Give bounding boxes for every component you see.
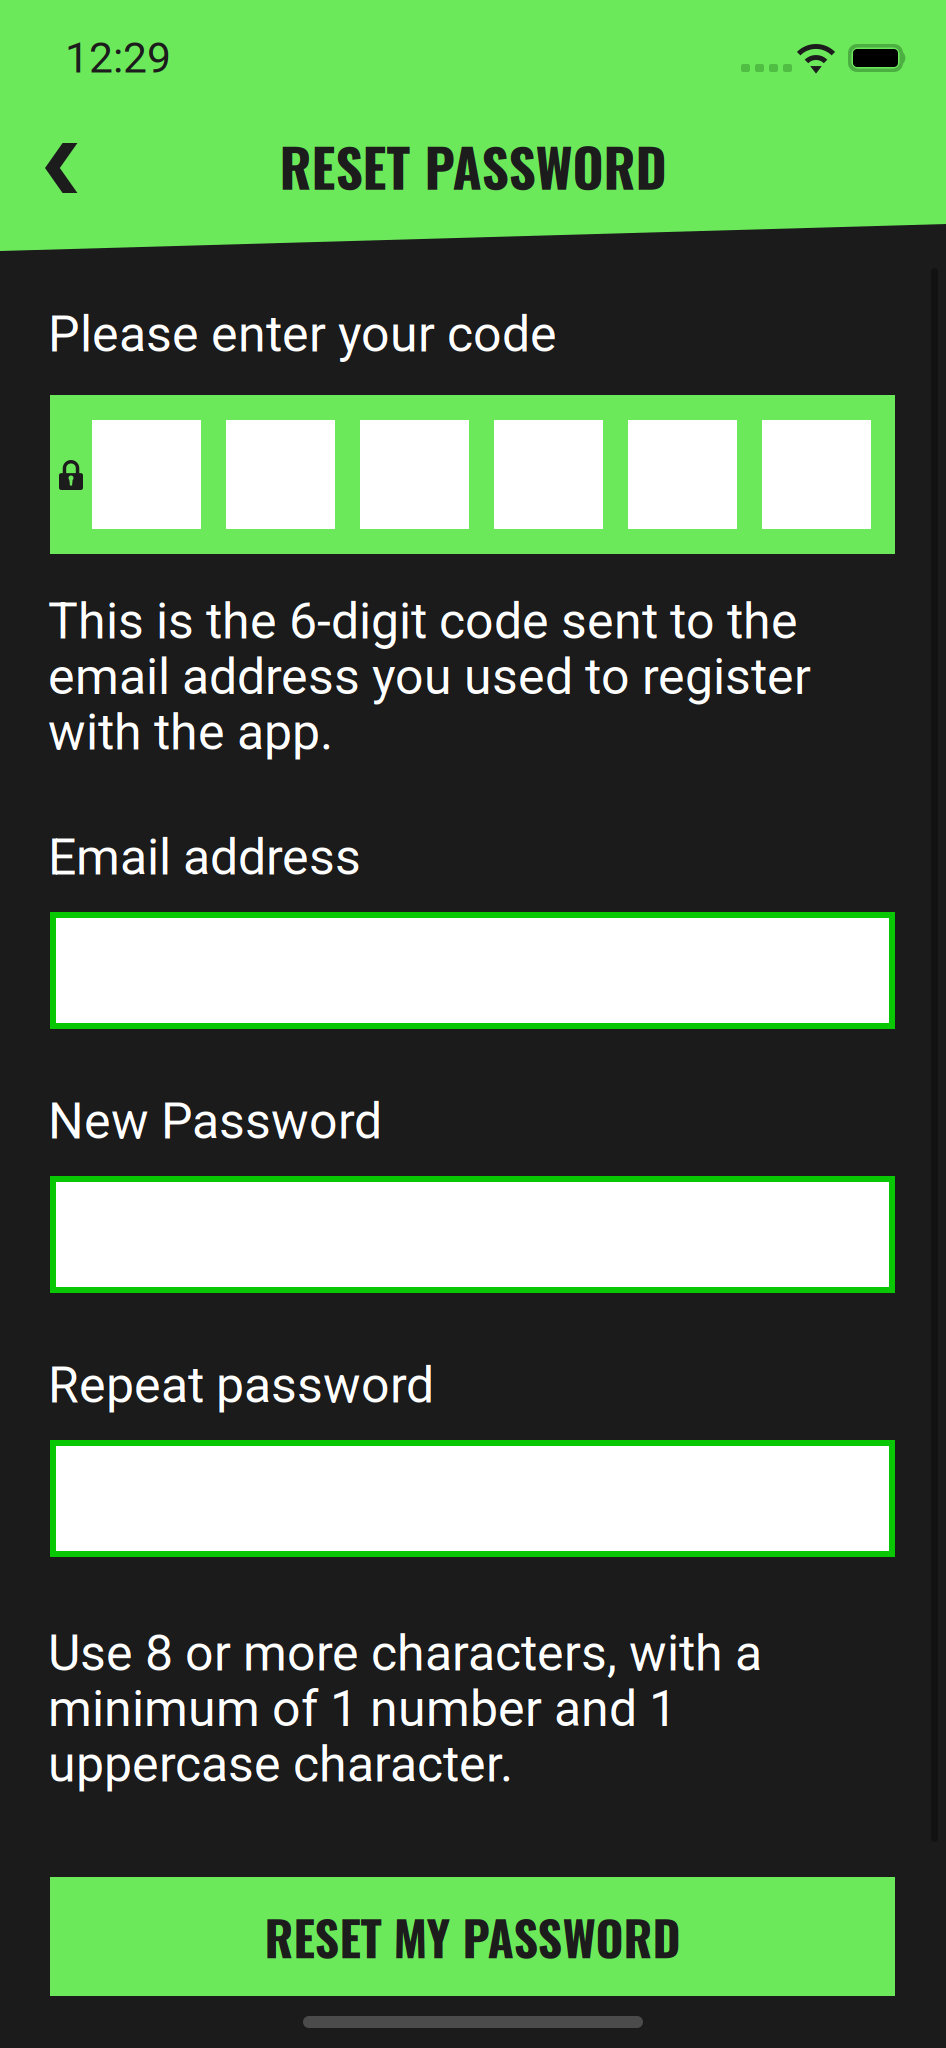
staticText: Email address xyxy=(48,828,361,887)
staticText: 12:29 xyxy=(65,33,171,83)
staticText: Please enter your code xyxy=(48,305,557,364)
staticText: This is the 6-digit code sent to the ema… xyxy=(48,592,811,762)
staticText: New Password xyxy=(48,1092,382,1151)
staticText: RESET MY PASSWORD xyxy=(264,1901,680,1972)
button[interactable]: RESET MY PASSWORD xyxy=(50,1877,895,1996)
button[interactable]: Back xyxy=(15,117,100,219)
staticText: Repeat password xyxy=(48,1356,434,1415)
staticText: RESET PASSWORD xyxy=(279,126,666,205)
staticText: Use 8 or more characters, with a minimum… xyxy=(48,1624,762,1794)
